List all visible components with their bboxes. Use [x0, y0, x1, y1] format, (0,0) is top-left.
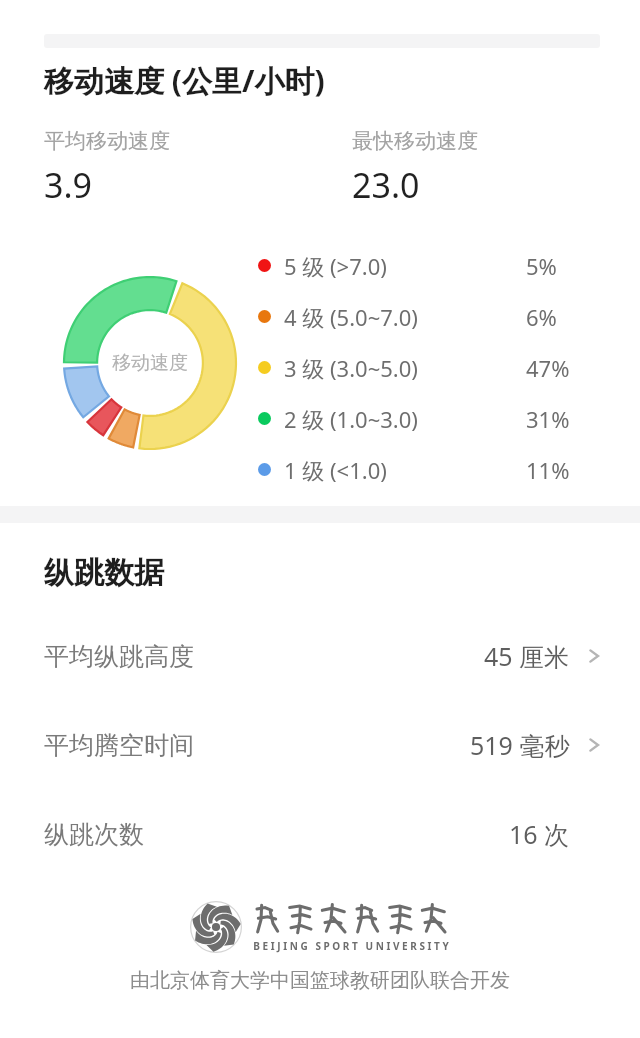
staticText: 3 级 (3.0~5.0) [284, 353, 418, 383]
staticText: 45 厘米 [484, 639, 570, 673]
staticText: 2 级 (1.0~3.0) [284, 404, 418, 434]
staticText: 47% [526, 353, 570, 383]
other: 查看详情 [584, 735, 604, 755]
staticText: 移动速度 [112, 351, 188, 375]
staticText: 4 级 (5.0~7.0) [284, 302, 418, 332]
staticText: 纵跳次数 [44, 819, 144, 850]
staticText: 纵跳数据 [44, 554, 164, 592]
other: 查看详情 [584, 646, 604, 666]
staticText: 23.0 [352, 162, 420, 208]
staticText: 最快移动速度 [352, 128, 478, 154]
button[interactable]: 1 级 (<1.0) [258, 444, 612, 495]
button[interactable]: 纵跳次数 [0, 796, 640, 872]
staticText: 519 毫秒 [470, 728, 570, 762]
staticText: 3.9 [44, 162, 93, 208]
staticText: 5 级 (>7.0) [284, 251, 387, 281]
staticText: 11% [526, 455, 570, 485]
staticText: 5% [526, 251, 557, 281]
staticText: 6% [526, 302, 557, 332]
button[interactable]: 3 级 (3.0~5.0) [258, 342, 612, 393]
button[interactable]: 5 级 (>7.0) [258, 240, 612, 291]
staticText: B E I J I N G S P O R T U N I V E R S I … [253, 939, 449, 953]
staticText: 移动速度 (公里/小时) [44, 60, 325, 101]
staticText: 由北京体育大学中国篮球教研团队联合开发 [130, 968, 510, 993]
button[interactable]: 平均纵跳高度 [0, 618, 640, 694]
staticText: 平均纵跳高度 [44, 641, 194, 672]
button[interactable]: 平均腾空时间 [0, 707, 640, 783]
staticText: 16 次 [509, 817, 570, 851]
button[interactable]: 4 级 (5.0~7.0) [258, 291, 612, 342]
staticText: 1 级 (<1.0) [284, 455, 387, 485]
button[interactable]: 2 级 (1.0~3.0) [258, 393, 612, 444]
staticText: 平均移动速度 [44, 128, 170, 154]
staticText: 31% [526, 404, 570, 434]
staticText: 平均腾空时间 [44, 730, 194, 761]
